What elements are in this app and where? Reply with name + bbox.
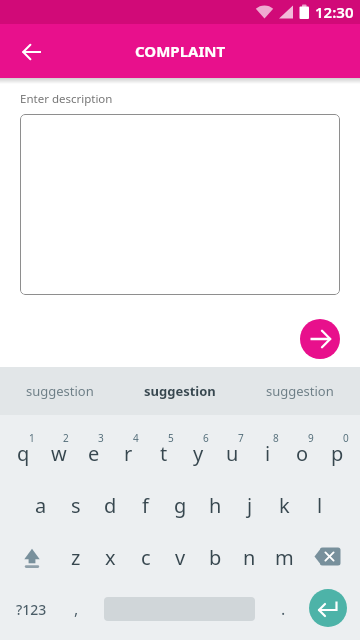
staticText: a [35,492,47,519]
button[interactable]: suggestion [240,367,360,415]
button[interactable]: u [215,432,250,474]
staticText: p [331,440,344,467]
staticText: 0 [343,431,349,445]
staticText: f [142,492,149,519]
button[interactable]: c [128,536,163,578]
staticText: 4 [133,431,139,445]
button[interactable]: s [58,484,93,526]
staticText: m [275,544,294,571]
button[interactable] [304,536,352,578]
staticText: 5 [168,431,174,445]
staticText: l [317,492,323,519]
staticText: 9 [308,431,314,445]
staticText: x [105,544,116,571]
button[interactable]: t [146,432,181,474]
staticText: suggestion [266,382,334,400]
button[interactable]: . [265,588,301,630]
staticText: c [141,544,151,571]
staticText: u [226,440,239,467]
staticText: y [193,440,204,467]
button[interactable]: b [198,536,233,578]
staticText: o [296,440,309,467]
staticText: k [279,492,290,519]
staticText: q [17,440,30,467]
button[interactable]: ?123 [7,588,55,630]
staticText: g [174,492,187,519]
button[interactable]: x [93,536,128,578]
staticText: b [209,544,222,571]
staticText: z [71,544,81,571]
staticText: 2 [63,431,69,445]
staticText: suggestion [26,382,94,400]
staticText: t [160,440,168,467]
button[interactable]: k [267,484,302,526]
button[interactable]: q [6,432,41,474]
staticText: e [88,440,100,467]
staticText: w [51,440,67,467]
button[interactable]: z [58,536,93,578]
staticText: h [209,492,222,519]
button[interactable] [8,536,56,578]
button[interactable]: suggestion [0,367,120,415]
button[interactable]: a [23,484,58,526]
staticText: . [281,598,286,620]
button[interactable]: n [232,536,267,578]
staticText: 3 [98,431,104,445]
staticText: COMPLAINT [135,41,226,61]
staticText: n [243,544,256,571]
button[interactable] [20,114,340,295]
button[interactable]: p [320,432,355,474]
staticText: , [74,598,79,620]
staticText: 7 [238,431,244,445]
staticText: suggestion [144,382,216,400]
button[interactable]: suggestion [120,367,240,415]
button[interactable]: j [232,484,267,526]
button[interactable]: y [181,432,216,474]
button[interactable]: v [163,536,198,578]
staticText: ?123 [16,600,47,619]
button[interactable] [300,319,340,359]
staticText: s [71,492,81,519]
staticText: 6 [203,431,209,445]
button[interactable] [8,27,56,75]
staticText: d [104,492,117,519]
staticText: j [247,492,253,519]
staticText: 8 [273,431,279,445]
button[interactable]: , [58,588,94,630]
button[interactable]: d [93,484,128,526]
staticText: v [175,544,186,571]
staticText: i [265,440,271,467]
button[interactable]: m [267,536,302,578]
button[interactable]: o [285,432,320,474]
button[interactable]: h [198,484,233,526]
staticText: 1 [29,431,35,445]
button[interactable]: w [41,432,76,474]
staticText: r [124,440,133,467]
button[interactable]: e [76,432,111,474]
staticText: 12:30 [315,2,354,22]
button[interactable] [309,589,347,627]
staticText: Enter description [20,91,113,107]
button[interactable]: r [111,432,146,474]
button[interactable]: f [128,484,163,526]
button[interactable]: l [302,484,337,526]
button[interactable]: i [250,432,285,474]
button[interactable]: g [163,484,198,526]
